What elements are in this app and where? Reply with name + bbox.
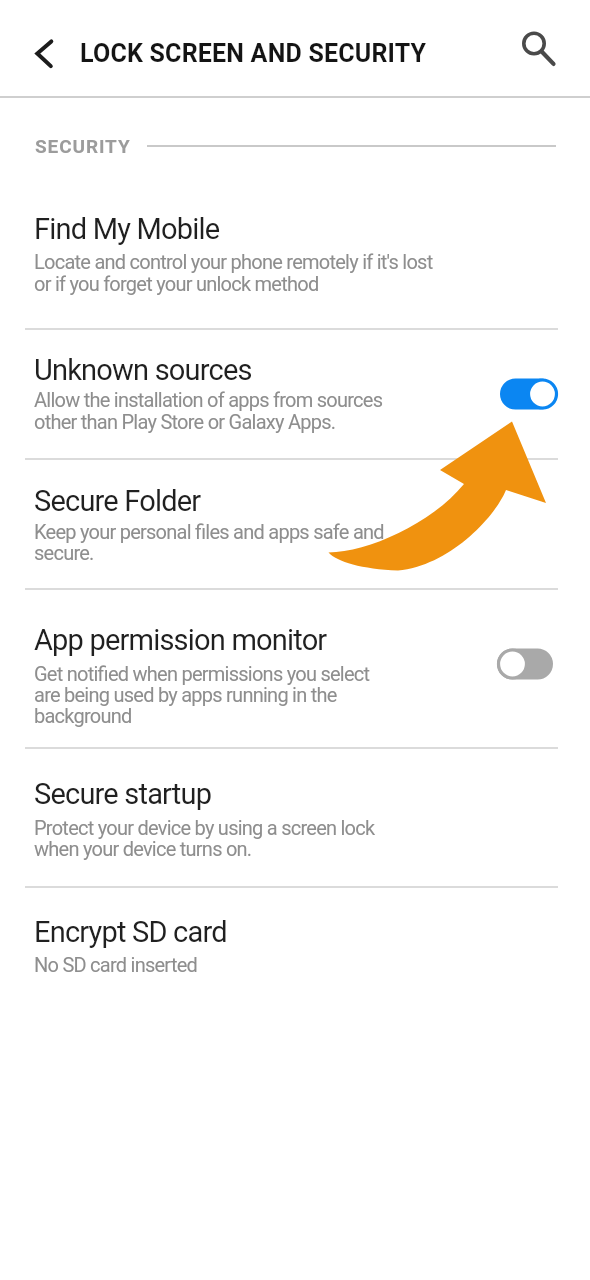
staticText: Find My Mobile xyxy=(34,212,220,246)
staticText: are being used by apps running in the xyxy=(34,683,337,706)
staticText: Secure startup xyxy=(34,777,212,811)
staticText: Get notified when permissions you select xyxy=(34,662,370,685)
staticText: Keep your personal files and apps safe a… xyxy=(34,520,384,543)
staticText: No SD card inserted xyxy=(34,953,198,976)
button[interactable]: Unknown sources xyxy=(0,329,590,458)
staticText: Encrypt SD card xyxy=(34,915,227,949)
button[interactable] xyxy=(508,18,564,74)
staticText: Protect your device by using a screen lo… xyxy=(34,816,375,839)
button[interactable] xyxy=(24,28,64,78)
staticText: or if you forget your unlock method xyxy=(34,272,319,295)
button[interactable]: Encrypt SD card xyxy=(0,887,590,990)
staticText: Unknown sources xyxy=(34,353,252,387)
staticText: SECURITY xyxy=(35,135,131,157)
staticText: background xyxy=(34,704,132,727)
staticText: LOCK SCREEN AND SECURITY xyxy=(80,39,427,68)
staticText: other than Play Store or Galaxy Apps. xyxy=(34,410,336,433)
button[interactable]: Secure Folder xyxy=(0,459,590,588)
staticText: when your device turns on. xyxy=(34,837,252,860)
staticText: Locate and control your phone remotely i… xyxy=(34,250,433,273)
staticText: secure. xyxy=(34,541,94,564)
button[interactable]: App permission monitor xyxy=(0,589,590,747)
button[interactable]: Find My Mobile xyxy=(0,166,590,329)
button[interactable]: Secure startup xyxy=(0,748,590,886)
staticText: Secure Folder xyxy=(34,484,201,518)
button[interactable] xyxy=(497,648,555,680)
staticText: Allow the installation of apps from sour… xyxy=(34,388,383,411)
staticText: App permission monitor xyxy=(34,623,327,657)
button[interactable] xyxy=(500,378,558,410)
